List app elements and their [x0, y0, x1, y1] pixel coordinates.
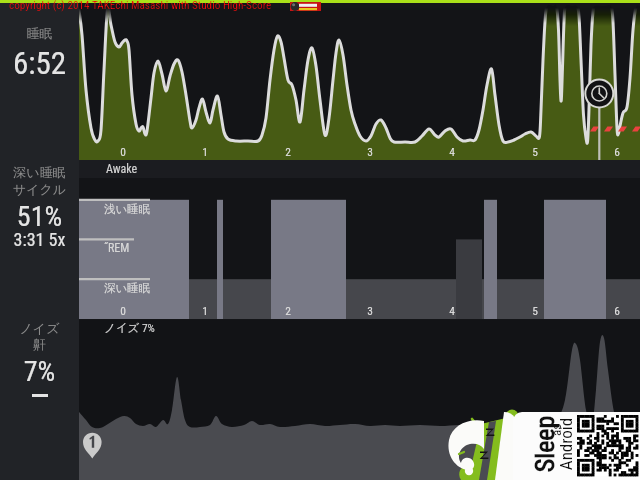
staticText: Awake — [106, 162, 138, 176]
staticText: 5 — [515, 304, 555, 317]
staticText: 1 — [185, 304, 225, 317]
staticText: 6 — [597, 145, 637, 158]
staticText: ノイズ — [0, 320, 79, 336]
staticText: ノイズ 7% — [104, 321, 155, 335]
staticText: 鼾 — [0, 336, 79, 352]
staticText: サイクル — [0, 181, 79, 197]
staticText: 深い睡眠 — [0, 164, 79, 180]
staticText: Sleep — [530, 374, 560, 480]
staticText: 深い睡眠 — [104, 281, 151, 295]
staticText: copyright (c) 2014 TAKEchi Masashi with … — [9, 0, 272, 12]
staticText: Android — [556, 374, 576, 480]
staticText: 1 — [185, 145, 225, 158]
staticText: 6:52 — [0, 45, 79, 81]
staticText: 4 — [432, 304, 472, 317]
staticText: 浅い睡眠 — [104, 202, 151, 216]
staticText: 0 — [103, 304, 143, 317]
staticText: 3 — [350, 304, 390, 317]
staticText: 3:31 5x — [0, 229, 79, 250]
staticText: 0 — [103, 145, 143, 158]
staticText: 6 — [597, 304, 637, 317]
staticText: 7% — [0, 355, 79, 388]
staticText: 2 — [268, 304, 308, 317]
staticText: ˝REM — [104, 241, 130, 255]
staticText: 3 — [350, 145, 390, 158]
staticText: 2 — [268, 145, 308, 158]
staticText: 5 — [515, 145, 555, 158]
staticText: as — [549, 360, 564, 480]
staticText: 51% — [0, 200, 79, 233]
staticText: 4 — [432, 145, 472, 158]
staticText: 睡眠 — [0, 25, 79, 41]
